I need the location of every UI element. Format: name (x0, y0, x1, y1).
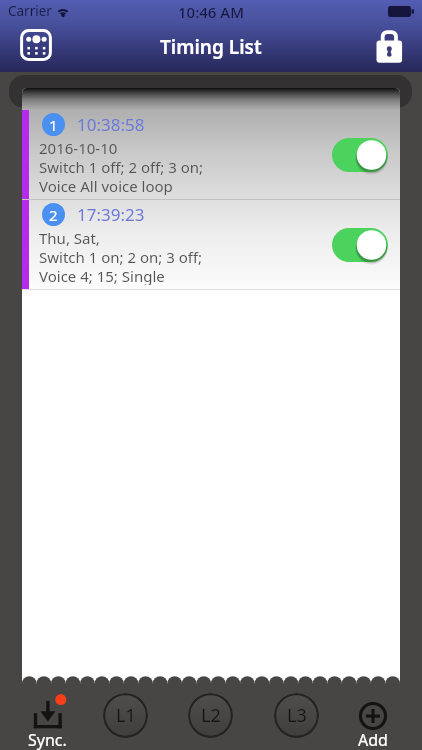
button[interactable]: 2 (22, 200, 400, 289)
button[interactable]: Sync. (14, 688, 84, 750)
button[interactable]: L2 (188, 693, 233, 738)
staticText: 10:38:58 (77, 113, 145, 136)
staticText: 1 (49, 115, 58, 135)
button[interactable]: Remote control (20, 29, 52, 61)
button[interactable]: Toggle timer 1 (332, 136, 390, 174)
staticText: 10:46 AM (178, 2, 244, 22)
staticText: Sync. (28, 729, 67, 750)
button[interactable]: 1 (22, 110, 400, 199)
staticText: L3 (287, 703, 307, 728)
staticText: Timing List (160, 34, 262, 60)
button[interactable]: Toggle timer 2 (332, 226, 390, 264)
staticText: L2 (201, 703, 221, 728)
staticText: L1 (116, 703, 136, 728)
staticText: Voice All voice loop (39, 176, 173, 195)
button[interactable]: L1 (103, 693, 148, 738)
staticText: 17:39:23 (77, 203, 145, 226)
staticText: 2016-10-10 (39, 138, 118, 157)
staticText: 2 (49, 205, 58, 225)
button[interactable]: Add (343, 702, 403, 750)
button[interactable]: L3 (274, 693, 319, 738)
staticText: Thu, Sat, (39, 228, 100, 247)
staticText: Add (358, 729, 388, 750)
button[interactable]: Lock (375, 27, 409, 63)
staticText: Switch 1 off; 2 off; 3 on; (39, 157, 204, 176)
staticText: Voice 4; 15; Single (39, 266, 165, 285)
staticText: Switch 1 on; 2 on; 3 off; (39, 247, 203, 266)
staticText: Carrier (8, 2, 52, 20)
